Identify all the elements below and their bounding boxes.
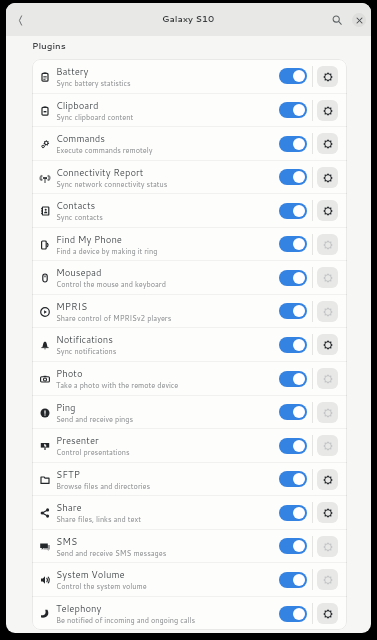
staticText: Sync battery statistics xyxy=(56,78,131,88)
button[interactable] xyxy=(279,236,307,252)
button[interactable]: Plugin settings xyxy=(317,267,338,288)
staticText: Commands xyxy=(56,132,106,145)
button[interactable]: SFTP xyxy=(32,463,347,495)
button[interactable]: Clipboard xyxy=(32,94,347,126)
staticText: Contacts xyxy=(56,199,96,212)
staticText: Send and receive pings xyxy=(56,414,134,424)
staticText: Galaxy S10 xyxy=(162,12,215,24)
button[interactable] xyxy=(279,169,307,185)
button[interactable] xyxy=(279,303,307,319)
button[interactable]: Search xyxy=(326,9,348,31)
button[interactable]: Plugin settings xyxy=(317,569,338,590)
button[interactable] xyxy=(279,471,307,487)
staticText: SMS xyxy=(56,535,78,548)
button[interactable]: Ping xyxy=(32,396,347,428)
button[interactable]: Plugin settings xyxy=(317,469,338,490)
button[interactable]: Battery xyxy=(32,59,347,93)
staticText: Browse files and directories xyxy=(56,481,151,491)
staticText: Find My Phone xyxy=(56,233,122,246)
button[interactable]: Plugin settings xyxy=(317,301,338,322)
staticText: Sync contacts xyxy=(56,212,103,222)
staticText: Telephony xyxy=(56,602,102,615)
button[interactable]: Plugin settings xyxy=(317,200,338,221)
button[interactable] xyxy=(279,102,307,118)
staticText: Connectivity Report xyxy=(56,166,144,179)
staticText: Presenter xyxy=(56,434,99,447)
button[interactable]: Plugin settings xyxy=(317,368,338,389)
button[interactable]: Share xyxy=(32,496,347,529)
staticText: Control presentations xyxy=(56,447,130,457)
button[interactable]: Plugin settings xyxy=(317,402,338,423)
button[interactable] xyxy=(279,203,307,219)
staticText: Share files, links and text xyxy=(56,514,141,524)
button[interactable]: Presenter xyxy=(32,429,347,462)
staticText: Take a photo with the remote device xyxy=(56,380,179,390)
button[interactable] xyxy=(279,505,307,521)
button[interactable]: Plugin settings xyxy=(317,435,338,456)
staticText: Control the mouse and keyboard xyxy=(56,279,166,289)
staticText: Ping xyxy=(56,401,76,414)
button[interactable] xyxy=(279,68,307,84)
button[interactable]: Plugin settings xyxy=(317,502,338,523)
button[interactable]: System Volume xyxy=(32,563,347,596)
staticText: MPRIS xyxy=(56,300,88,313)
staticText: Find a device by making it ring xyxy=(56,246,158,256)
button[interactable]: Find My Phone xyxy=(32,228,347,260)
staticText: Sync network connectivity status xyxy=(56,179,168,189)
button[interactable]: Telephony xyxy=(32,597,347,630)
staticText: SFTP xyxy=(56,468,80,481)
staticText: Clipboard xyxy=(56,99,99,112)
staticText: Plugins xyxy=(32,39,66,51)
button[interactable]: Photo xyxy=(32,362,347,395)
staticText: Photo xyxy=(56,367,83,380)
button[interactable]: Mousepad xyxy=(32,261,347,294)
staticText: Execute commands remotely xyxy=(56,145,153,155)
button[interactable]: Contacts xyxy=(32,194,347,227)
staticText: Share xyxy=(56,501,82,514)
button[interactable]: MPRIS xyxy=(32,295,347,327)
button[interactable] xyxy=(279,606,307,622)
staticText: Send and receive SMS messages xyxy=(56,548,167,558)
button[interactable]: Close xyxy=(352,13,366,27)
button[interactable] xyxy=(279,404,307,420)
button[interactable]: Plugin settings xyxy=(317,334,338,355)
button[interactable]: Notifications xyxy=(32,328,347,361)
staticText: Control the system volume xyxy=(56,581,147,591)
button[interactable]: Plugin settings xyxy=(317,603,338,624)
button[interactable]: SMS xyxy=(32,530,347,562)
button[interactable]: Plugin settings xyxy=(317,536,338,557)
button[interactable]: Commands xyxy=(32,127,347,160)
staticText: Be notified of incoming and ongoing call… xyxy=(56,615,196,625)
button[interactable] xyxy=(279,538,307,554)
staticText: Sync clipboard content xyxy=(56,112,134,122)
button[interactable]: Back xyxy=(8,8,32,32)
button[interactable]: Plugin settings xyxy=(317,66,338,87)
button[interactable] xyxy=(279,270,307,286)
staticText: Share control of MPRISv2 players xyxy=(56,313,172,323)
staticText: Mousepad xyxy=(56,266,102,279)
button[interactable] xyxy=(279,572,307,588)
button[interactable] xyxy=(279,438,307,454)
button[interactable] xyxy=(279,337,307,353)
button[interactable]: Plugin settings xyxy=(317,167,338,188)
button[interactable]: Plugin settings xyxy=(317,133,338,154)
button[interactable] xyxy=(279,371,307,387)
staticText: Sync notifications xyxy=(56,346,117,356)
staticText: Battery xyxy=(56,65,89,78)
button[interactable]: Plugin settings xyxy=(317,100,338,121)
staticText: Notifications xyxy=(56,333,113,346)
button[interactable]: Connectivity Report xyxy=(32,161,347,193)
button[interactable]: Plugin settings xyxy=(317,234,338,255)
staticText: System Volume xyxy=(56,568,125,581)
button[interactable] xyxy=(279,136,307,152)
